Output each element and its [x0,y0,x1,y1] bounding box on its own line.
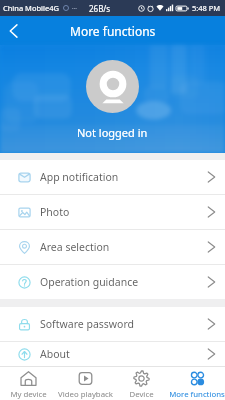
button[interactable]: Operation guidance [0,265,225,299]
button[interactable]: Area selection [0,230,225,264]
staticText: Operation guidance [40,275,139,289]
button[interactable]: Device [113,367,169,400]
staticText: Not logged in [77,125,148,140]
staticText: My device [10,389,47,400]
staticText: Video playback [58,389,113,400]
staticText: ··· [72,4,77,12]
staticText: China Mobile4G [3,3,59,13]
button[interactable]: Back [0,17,26,45]
staticText: 26B/s [89,3,111,14]
button[interactable]: My device [0,367,57,400]
staticText: More functions [169,389,225,400]
button[interactable]: About [0,342,225,366]
staticText: More functions [70,23,156,39]
button[interactable]: Video playback [57,367,113,400]
button[interactable]: Photo [0,195,225,229]
button[interactable]: App notification [0,160,225,194]
staticText: About [40,347,70,361]
staticText: 5:48 PM [192,3,221,13]
staticText: Device [129,389,154,400]
staticText: Area selection [40,240,110,254]
staticText: Photo [40,205,70,219]
button[interactable]: Profile avatar [86,60,139,113]
button[interactable]: More functions [169,367,225,400]
staticText: App notification [40,170,119,184]
button[interactable]: Software password [0,307,225,341]
staticText: Software password [40,317,135,331]
